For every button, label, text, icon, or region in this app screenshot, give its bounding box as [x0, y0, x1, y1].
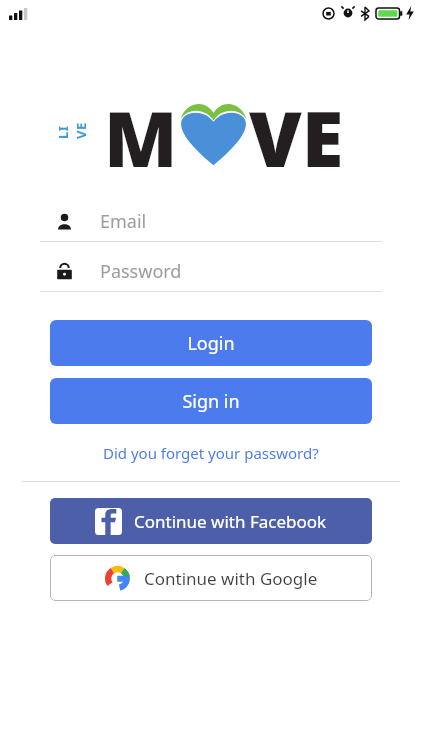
button[interactable]: Sign in	[50, 378, 372, 424]
staticText: Continue with Facebook	[134, 510, 327, 533]
button[interactable]: Login	[50, 320, 372, 366]
staticText: Continue with Google	[144, 567, 318, 590]
button[interactable]: Password	[40, 251, 382, 292]
button[interactable]: Email	[40, 201, 382, 242]
staticText: Did you forget your password?	[103, 443, 319, 463]
button[interactable]: Continue with Google	[50, 555, 372, 601]
button[interactable]: Continue with Facebook	[50, 498, 372, 544]
button[interactable]: Did you forget your password?	[0, 438, 422, 468]
staticText: Email	[100, 209, 147, 234]
staticText: Sign in	[182, 389, 240, 414]
staticText: Password	[100, 259, 182, 284]
staticText: Login	[187, 331, 235, 356]
staticText: LIVE	[54, 117, 90, 139]
staticText: M	[104, 86, 178, 170]
staticText: VE	[249, 86, 344, 170]
